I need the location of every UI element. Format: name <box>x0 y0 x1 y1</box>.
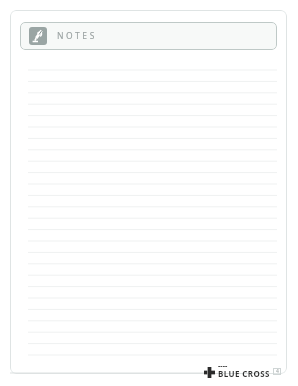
other: Notes <box>29 27 47 45</box>
staticText: ▬▬▬▬ <box>218 365 228 368</box>
staticText: 4 <box>276 368 279 375</box>
staticText: NOTES <box>57 30 97 42</box>
button[interactable]: Page number <box>273 368 281 375</box>
button[interactable]: Notes <box>20 22 277 50</box>
button[interactable]: Blue Cross <box>204 365 270 379</box>
staticText: BLUE CROSS <box>218 368 270 379</box>
